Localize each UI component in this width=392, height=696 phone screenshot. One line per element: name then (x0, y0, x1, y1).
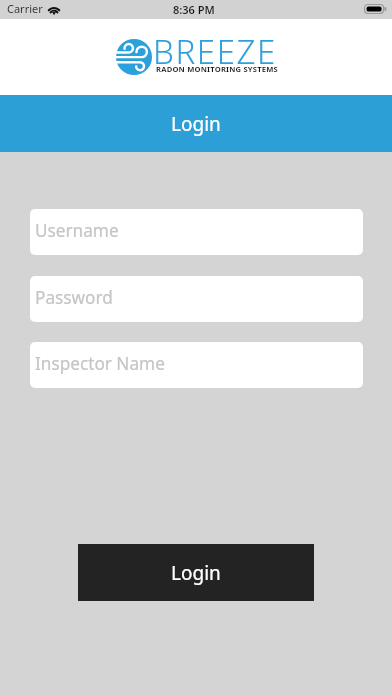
staticText: 8:36 PM (173, 2, 215, 17)
staticText: Inspector Name (35, 352, 165, 375)
staticText: Username (35, 219, 119, 242)
staticText: BREEZE (153, 29, 277, 74)
staticText: Login (171, 560, 221, 586)
staticText: RADON MONITORING SYSTEMS (156, 64, 278, 74)
staticText: Carrier (7, 1, 43, 16)
button[interactable]: Inspector Name (30, 342, 363, 388)
button[interactable]: Username (30, 209, 363, 255)
staticText: Password (35, 286, 113, 309)
other: Wi-Fi signal (47, 5, 61, 15)
staticText: Login (171, 111, 221, 137)
button[interactable]: Password (30, 276, 363, 322)
other: Battery full (364, 4, 387, 14)
button[interactable]: Login (78, 544, 314, 601)
